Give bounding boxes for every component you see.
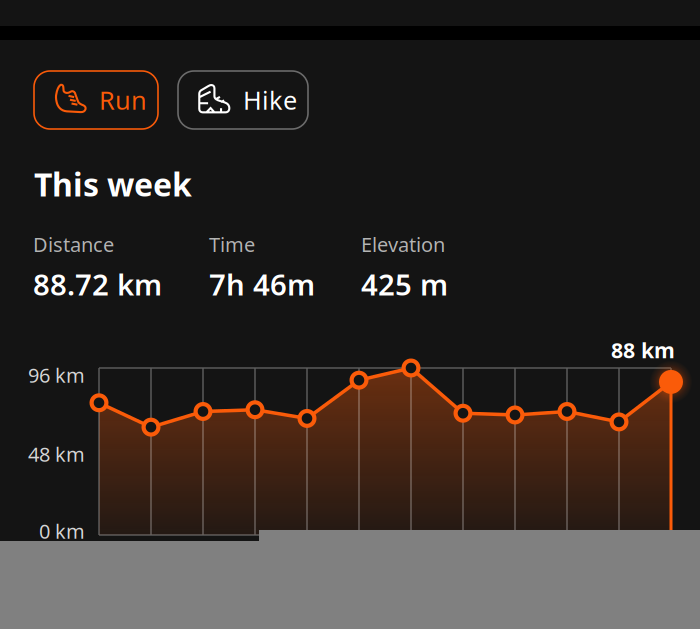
- staticText: Hike: [243, 83, 297, 117]
- staticText: 48 km: [28, 441, 85, 467]
- staticText: Distance: [33, 231, 114, 258]
- button[interactable]: Hike: [178, 71, 308, 129]
- staticText: 88 km: [611, 336, 675, 364]
- button[interactable]: Run: [34, 71, 158, 129]
- staticText: 0 km: [39, 518, 85, 544]
- staticText: Time: [209, 231, 255, 258]
- staticText: Run: [99, 83, 147, 117]
- staticText: 425 m: [361, 265, 448, 304]
- staticText: 88.72 km: [33, 265, 162, 304]
- staticText: This week: [34, 163, 192, 205]
- staticText: 96 km: [28, 362, 85, 388]
- staticText: 7h 46m: [209, 265, 315, 304]
- staticText: Elevation: [361, 231, 445, 258]
